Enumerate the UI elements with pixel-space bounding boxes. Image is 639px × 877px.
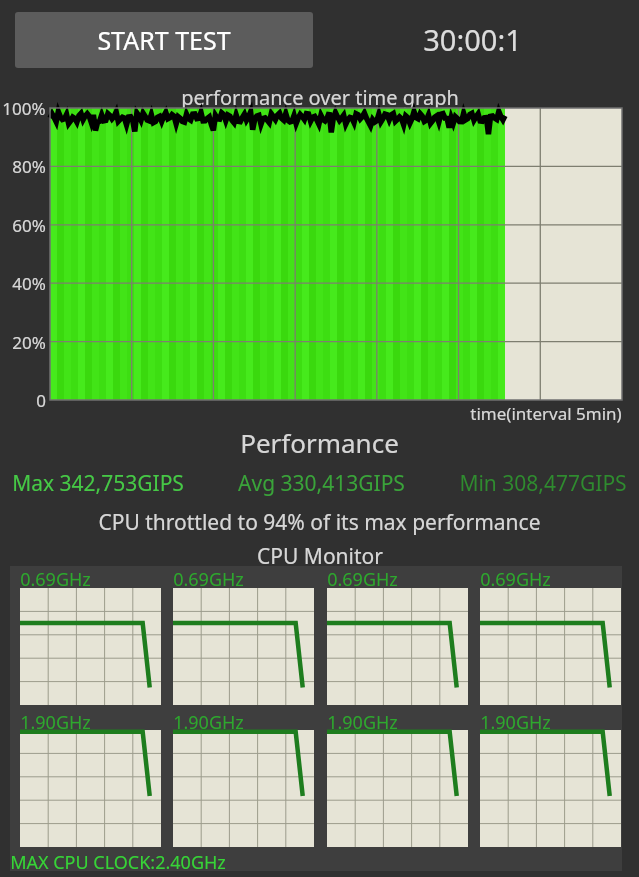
staticText: 1.90GHz [480,710,551,735]
staticText: CPU Monitor [257,542,383,571]
staticText: Max 342,753GIPS [12,469,184,498]
staticText: 80% [12,155,46,178]
staticText: 0 [36,389,46,412]
staticText: 1.90GHz [327,710,398,735]
staticText: 60% [12,214,46,237]
staticText: Avg 330,413GIPS [238,469,405,498]
staticText: 0.69GHz [480,567,551,592]
staticText: time(interval 5min) [470,402,622,425]
other: CPU core frequency monitor [0,0,639,877]
staticText: 1.90GHz [20,710,91,735]
staticText: 20% [12,331,46,354]
staticText: 0.69GHz [327,567,398,592]
button[interactable]: START TEST [15,12,313,68]
staticText: 100% [2,97,46,120]
staticText: performance over time graph [181,84,459,108]
staticText: Performance [240,425,399,460]
staticText: MAX CPU CLOCK:2.40GHz [10,850,226,875]
staticText: START TEST [97,23,231,57]
staticText: 30:00:1 [423,20,522,59]
staticText: Min 308,477GIPS [459,469,627,498]
staticText: 0.69GHz [173,567,244,592]
staticText: 0.69GHz [20,567,91,592]
staticText: 40% [12,272,46,295]
staticText: 1.90GHz [173,710,244,735]
staticText: CPU throttled to 94% of its max performa… [98,508,541,537]
